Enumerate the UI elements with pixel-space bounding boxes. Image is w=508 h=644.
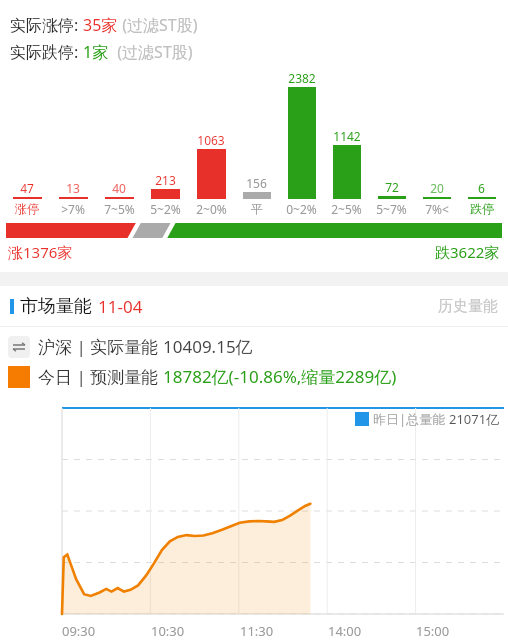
staticText: >7% (61, 201, 85, 217)
staticText: 0~2% (286, 201, 317, 217)
staticText: 涨停 (15, 201, 39, 216)
staticText: 6 (478, 180, 485, 196)
staticText: 09:30 (62, 622, 96, 640)
staticText: 7%< (425, 201, 449, 217)
staticText: 213 (155, 172, 176, 188)
staticText: 11-04 (98, 295, 143, 318)
staticText: 昨日|总量能 (373, 410, 449, 428)
staticText: 20 (430, 180, 444, 196)
button[interactable]: Switch market (8, 335, 253, 358)
other: Switch market (8, 336, 30, 358)
staticText: 1063 (197, 132, 225, 148)
staticText: 10:30 (151, 622, 185, 640)
staticText: 72 (385, 179, 399, 195)
staticText: 14:00 (328, 622, 362, 640)
staticText: 跌停 (470, 201, 494, 216)
staticText: 沪深 | 实际量能 (38, 335, 163, 358)
staticText: 市场量能 (20, 295, 92, 318)
staticText: 2~5% (331, 201, 362, 217)
staticText: 5~7% (376, 201, 407, 217)
staticText: 13 (66, 180, 80, 196)
staticText: 历史量能 (438, 297, 498, 316)
staticText: 18782亿(-10.86%,缩量2289亿) (163, 365, 397, 388)
staticText: 1142 (333, 128, 361, 144)
staticText: 1家 (83, 41, 109, 63)
staticText: 15:00 (416, 622, 450, 640)
staticText: 11:30 (240, 622, 274, 640)
staticText: 实际涨停: (10, 14, 83, 36)
staticText: 2382 (288, 70, 316, 86)
staticText: (过滤ST股) (118, 14, 198, 36)
button[interactable]: 今日 | 预测量能 (8, 365, 397, 388)
staticText: 10409.15亿 (163, 335, 253, 358)
staticText: 平 (251, 201, 263, 216)
staticText: 2~0% (196, 201, 227, 217)
staticText: 7~5% (104, 201, 135, 217)
button[interactable]: 昨日|总量能 (355, 410, 500, 428)
staticText: (过滤ST股) (109, 41, 193, 63)
staticText: 5~2% (150, 201, 181, 217)
staticText: 40 (112, 180, 126, 196)
staticText: 实际跌停: (10, 41, 83, 63)
button[interactable]: 市场量能 (0, 286, 508, 326)
staticText: 今日 | 预测量能 (38, 365, 163, 388)
staticText: 156 (246, 175, 267, 191)
staticText: 35家 (83, 14, 118, 36)
staticText: 47 (20, 180, 34, 196)
staticText: 跌3622家 (435, 242, 500, 262)
staticText: 21071亿 (449, 410, 500, 428)
staticText: 涨1376家 (8, 242, 73, 262)
